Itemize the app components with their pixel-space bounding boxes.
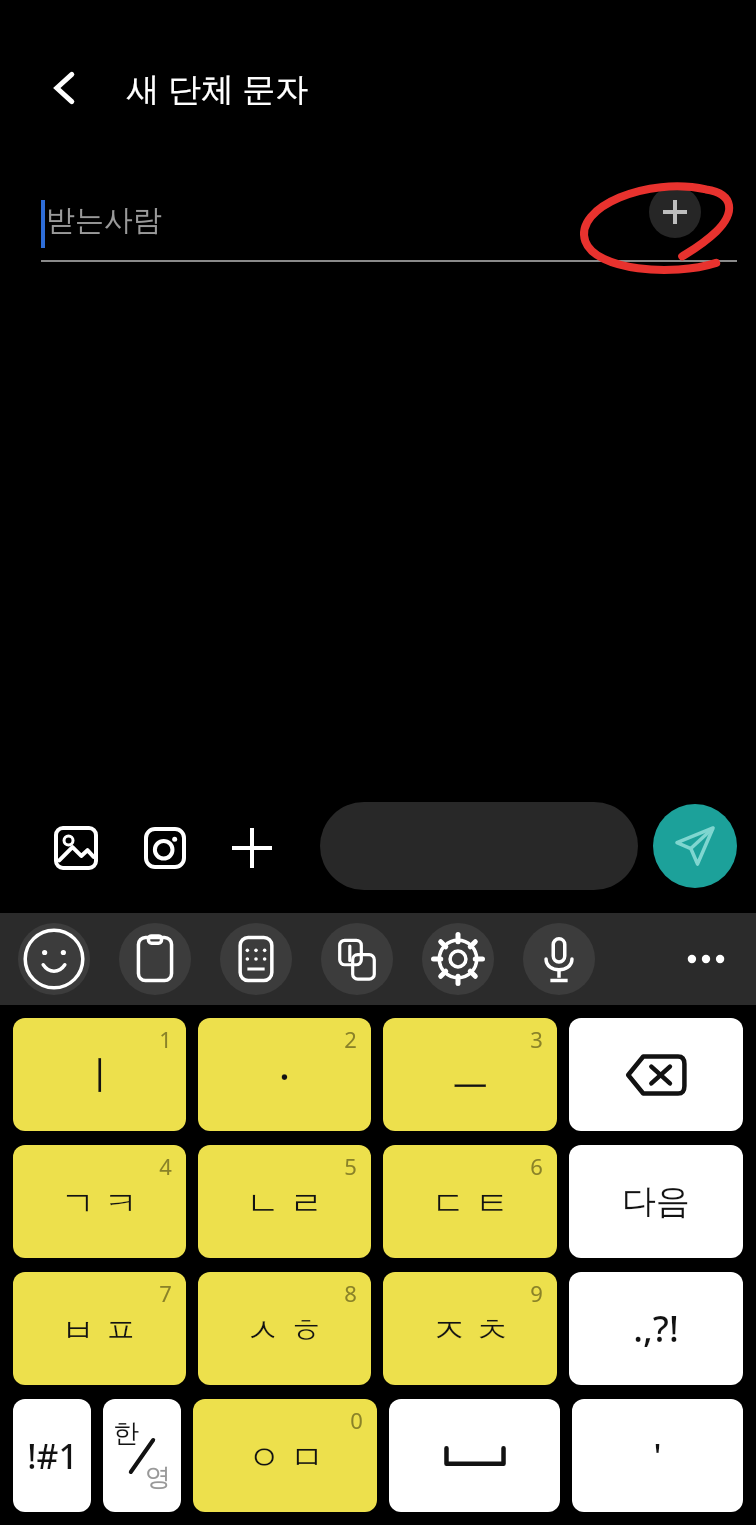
- staticText: ㄴ ㄹ: [246, 1179, 323, 1225]
- staticText: 영: [145, 1461, 171, 1494]
- button[interactable]: Gallery: [40, 812, 112, 884]
- button[interactable]: Back: [34, 57, 96, 119]
- staticText: 2: [344, 1024, 357, 1054]
- button[interactable]: Keyboard layout: [220, 923, 292, 995]
- staticText: ㅂ ㅍ: [61, 1306, 138, 1352]
- staticText: 새 단체 문자: [126, 66, 309, 111]
- button[interactable]: ㅈ ㅊ: [383, 1272, 557, 1385]
- button[interactable]: Emoji: [18, 923, 90, 995]
- staticText: 0: [350, 1405, 363, 1435]
- button[interactable]: Clipboard: [119, 923, 191, 995]
- button[interactable]: ㅇ ㅁ: [193, 1399, 377, 1512]
- button[interactable]: ㅅ ㅎ: [198, 1272, 371, 1385]
- button[interactable]: 받는사람: [0, 160, 756, 268]
- staticText: 다음: [622, 1180, 690, 1223]
- staticText: 1: [159, 1024, 172, 1054]
- button[interactable]: Send: [653, 804, 737, 888]
- staticText: ㅇ ㅁ: [247, 1433, 324, 1479]
- staticText: ': [653, 1433, 662, 1479]
- button[interactable]: More options: [670, 923, 742, 995]
- button[interactable]: ·: [198, 1018, 371, 1131]
- staticText: ㅣ: [80, 1050, 120, 1100]
- staticText: 받는사람: [46, 202, 162, 239]
- staticText: ㅅ ㅎ: [246, 1306, 323, 1352]
- button[interactable]: ㅣ: [13, 1018, 186, 1131]
- staticText: 7: [159, 1278, 172, 1308]
- staticText: 9: [530, 1278, 543, 1308]
- staticText: 5: [344, 1151, 357, 1181]
- button[interactable]: Backspace: [569, 1018, 743, 1131]
- staticText: !#1: [27, 1433, 78, 1479]
- button[interactable]: Space: [389, 1399, 560, 1512]
- staticText: 6: [530, 1151, 543, 1181]
- button[interactable]: .,?!: [569, 1272, 743, 1385]
- staticText: ㄷ ㅌ: [432, 1179, 509, 1225]
- button[interactable]: Add recipient: [649, 186, 701, 238]
- button[interactable]: Voice input: [523, 923, 595, 995]
- button[interactable]: Korean English toggle: [103, 1399, 181, 1512]
- staticText: 4: [159, 1151, 172, 1181]
- staticText: 한: [113, 1417, 139, 1450]
- staticText: 8: [344, 1278, 357, 1308]
- button[interactable]: ㄷ ㅌ: [383, 1145, 557, 1258]
- staticText: ·: [279, 1048, 290, 1102]
- button[interactable]: Settings: [422, 923, 494, 995]
- button[interactable]: ㅂ ㅍ: [13, 1272, 186, 1385]
- staticText: ㅡ: [450, 1050, 490, 1100]
- staticText: ㅈ ㅊ: [432, 1306, 509, 1352]
- button[interactable]: Camera: [129, 812, 201, 884]
- button[interactable]: 다음: [569, 1145, 743, 1258]
- staticText: ㄱ ㅋ: [61, 1179, 138, 1225]
- staticText: 3: [530, 1024, 543, 1054]
- button[interactable]: ': [572, 1399, 743, 1512]
- button[interactable]: ㅡ: [383, 1018, 557, 1131]
- button[interactable]: ㄴ ㄹ: [198, 1145, 371, 1258]
- button[interactable]: More attachments: [216, 812, 288, 884]
- button[interactable]: !#1: [13, 1399, 91, 1512]
- button[interactable]: Translate: [321, 923, 393, 995]
- button[interactable]: ㄱ ㅋ: [13, 1145, 186, 1258]
- staticText: .,?!: [633, 1304, 679, 1353]
- button[interactable]: [320, 802, 638, 890]
